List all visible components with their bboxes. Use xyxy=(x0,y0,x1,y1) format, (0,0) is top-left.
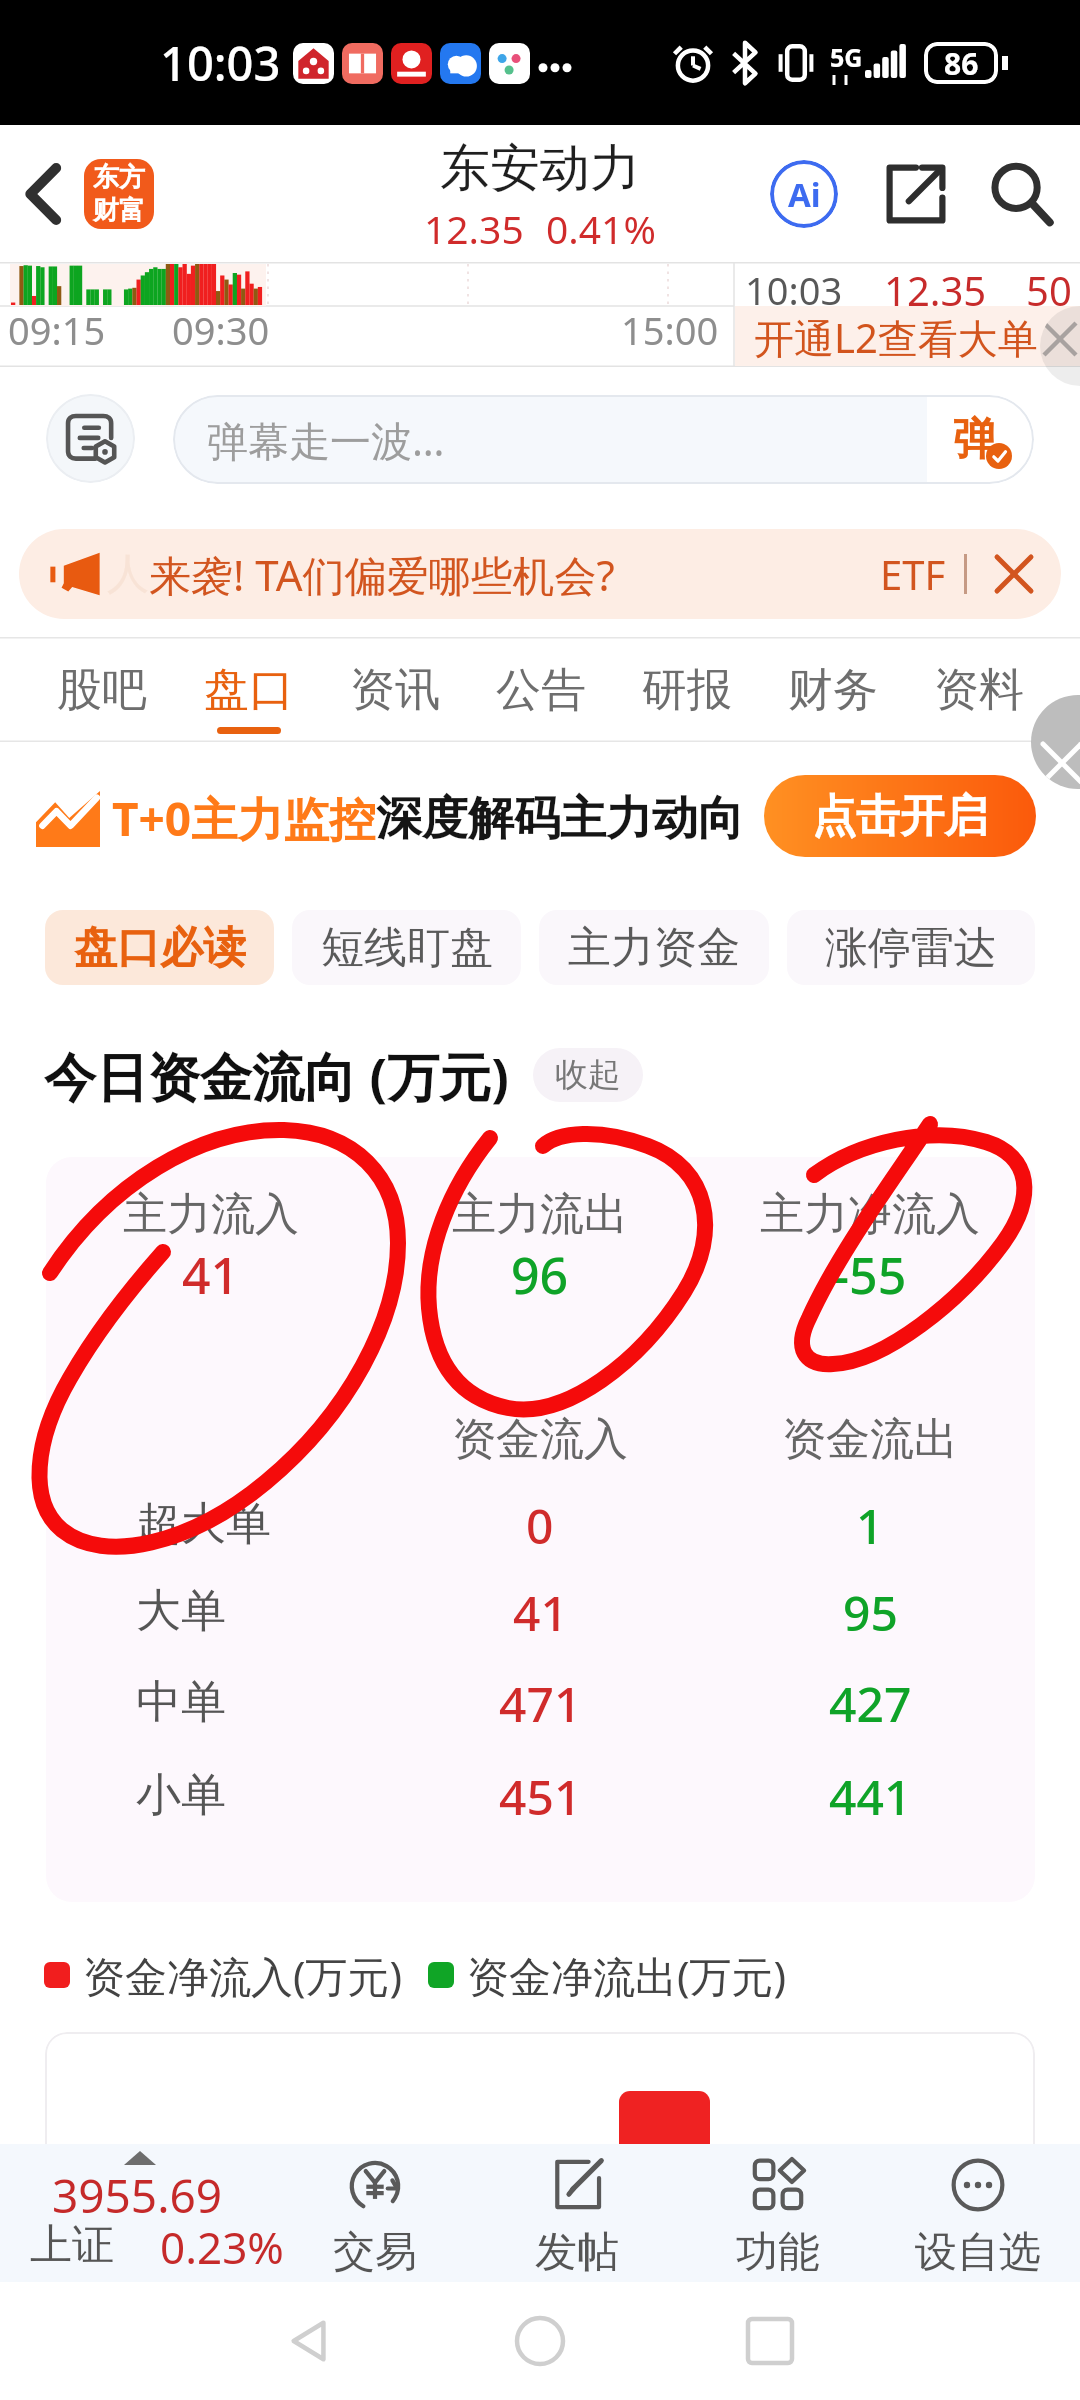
staticText: 股吧 xyxy=(57,662,147,719)
staticText: 12.35 xyxy=(884,263,987,317)
staticText: 短线盯盘 xyxy=(321,921,493,975)
button[interactable]: Close quote banner xyxy=(1040,306,1080,386)
staticText: 资金净流出(万元) xyxy=(467,1947,787,2004)
button[interactable]: 人 xyxy=(19,529,1061,619)
staticText: 上证 xyxy=(30,2219,114,2272)
staticText: 09:15 xyxy=(8,304,106,356)
staticText: 财富 xyxy=(93,194,145,227)
staticText: 公告 xyxy=(496,662,586,719)
staticText: 0.23% xyxy=(160,2217,284,2277)
staticText: ETF xyxy=(880,547,946,601)
staticText: 收起 xyxy=(555,1054,621,1096)
button[interactable]: 开通L2查看大单 xyxy=(736,307,1056,367)
button[interactable]: 盘口 xyxy=(175,637,322,742)
button[interactable]: 资料 xyxy=(906,637,1052,742)
button[interactable]: Home xyxy=(492,2293,588,2389)
staticText: 资料 xyxy=(934,662,1024,719)
staticText: 资金净流入(万元) xyxy=(83,1947,403,2004)
button[interactable]: 涨停雷达 xyxy=(787,910,1035,985)
button[interactable]: Close banner xyxy=(987,547,1041,601)
button[interactable]: 3955.69 xyxy=(0,2144,282,2282)
button[interactable]: 研报 xyxy=(614,637,760,742)
staticText: 主力流入 xyxy=(123,1187,299,1242)
staticText: 深度解码主力动向 xyxy=(376,790,744,848)
staticText: 10:03 xyxy=(745,264,843,316)
button[interactable]: 股吧 xyxy=(28,637,175,742)
button[interactable]: 主力净流入 xyxy=(705,1157,1035,1327)
staticText: 441 xyxy=(829,1764,912,1826)
staticText: 15:00 xyxy=(621,304,719,356)
button[interactable]: Back xyxy=(6,156,82,232)
button[interactable]: 点击开启 xyxy=(764,775,1036,857)
staticText: 资讯 xyxy=(350,662,440,719)
staticText: 资金流入 xyxy=(452,1412,628,1460)
staticText: 95 xyxy=(843,1580,898,1642)
staticText: Ai xyxy=(788,172,821,217)
staticText: 发帖 xyxy=(535,2226,619,2279)
button[interactable]: Search xyxy=(984,156,1060,232)
button[interactable]: East Money home xyxy=(84,159,154,229)
staticText: -55 xyxy=(833,1241,907,1309)
staticText: 96 xyxy=(511,1241,569,1309)
button[interactable]: 财务 xyxy=(760,637,906,742)
staticText: 人 xyxy=(107,548,149,601)
staticText: 41 xyxy=(182,1241,240,1309)
staticText: 开通L2查看大单 xyxy=(754,310,1038,365)
staticText: 超大单 xyxy=(136,1496,271,1553)
button[interactable]: 大单 xyxy=(46,1580,1035,1642)
staticText: 主力净流入 xyxy=(760,1187,980,1242)
button[interactable]: 主力流入 xyxy=(46,1157,375,1327)
staticText: 451 xyxy=(499,1764,582,1826)
button[interactable]: Close advertisement xyxy=(1031,695,1080,789)
staticText: 86 xyxy=(944,43,979,84)
button[interactable]: Share xyxy=(880,158,952,230)
staticText: 主力资金 xyxy=(568,921,740,975)
staticText: 弹 xyxy=(953,412,997,467)
staticText: 12.35 xyxy=(424,202,524,255)
staticText: 点击开启 xyxy=(812,789,988,844)
button[interactable]: 主力流出 xyxy=(375,1157,705,1327)
staticText: 财务 xyxy=(788,662,878,719)
staticText: 41 xyxy=(513,1580,568,1642)
button[interactable]: 超大单 xyxy=(46,1493,1035,1555)
staticText: 功能 xyxy=(736,2226,820,2279)
button[interactable]: AI assistant xyxy=(764,154,844,234)
button[interactable]: 收起 xyxy=(533,1048,643,1102)
button[interactable]: 发帖 xyxy=(477,2144,677,2282)
staticText: 资金流出 xyxy=(782,1412,958,1460)
button[interactable]: 资讯 xyxy=(322,637,468,742)
staticText: 427 xyxy=(829,1671,912,1733)
staticText: 小单 xyxy=(136,1767,226,1824)
staticText: 盘口必读 xyxy=(74,921,246,975)
staticText: 10:03 xyxy=(160,31,281,95)
staticText: 盘口 xyxy=(204,662,294,719)
staticText: 中单 xyxy=(136,1674,226,1731)
staticText: 交易 xyxy=(333,2226,417,2279)
button[interactable]: Recent apps xyxy=(722,2293,818,2389)
button[interactable]: 弹幕走一波… xyxy=(173,395,1034,484)
staticText: 东安动力 xyxy=(440,137,640,200)
staticText: 09:30 xyxy=(172,304,270,356)
button[interactable]: Danmu settings xyxy=(46,394,135,483)
button[interactable]: Back xyxy=(262,2293,358,2389)
staticText: 5G xyxy=(830,40,863,74)
staticText: 设自选 xyxy=(915,2226,1041,2279)
button[interactable]: 功能 xyxy=(678,2144,878,2282)
staticText: 0 xyxy=(526,1493,554,1555)
button[interactable]: 中单 xyxy=(46,1671,1035,1733)
staticText: 大单 xyxy=(136,1583,226,1640)
staticText: 研报 xyxy=(642,662,732,719)
button[interactable]: 交易 xyxy=(275,2144,475,2282)
button[interactable]: 小单 xyxy=(46,1764,1035,1826)
button[interactable]: 短线盯盘 xyxy=(292,910,521,985)
button[interactable]: 设自选 xyxy=(878,2144,1078,2282)
staticText: 1 xyxy=(856,1493,884,1555)
staticText: 来袭! TA们偏爱哪些机会? xyxy=(149,546,615,603)
staticText: 50 xyxy=(1026,263,1072,317)
staticText: 主力流出 xyxy=(452,1187,628,1242)
staticText: 0.41% xyxy=(546,202,656,255)
button[interactable]: 主力资金 xyxy=(539,910,769,985)
staticText: 弹幕走一波… xyxy=(207,412,445,468)
button[interactable]: 盘口必读 xyxy=(45,910,274,985)
button[interactable]: 公告 xyxy=(468,637,614,742)
